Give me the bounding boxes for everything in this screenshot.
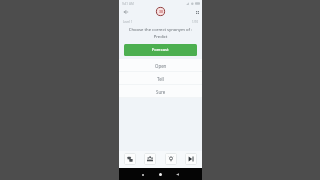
button[interactable]: Fifty fifty: [124, 153, 136, 165]
button[interactable]: Back: [176, 173, 179, 176]
staticText: Level 1: [123, 20, 133, 24]
staticText: Tell: [157, 76, 164, 82]
button[interactable]: Dashboard: [193, 8, 201, 16]
button[interactable]: Sure: [119, 85, 202, 98]
staticText: 9:41 AM: [122, 2, 134, 6]
button[interactable]: Forecast: [124, 44, 197, 56]
staticText: Forecast: [152, 47, 169, 53]
staticText: Sure: [156, 89, 166, 95]
button[interactable]: Home: [159, 173, 162, 176]
button[interactable]: Ask the audience: [144, 153, 156, 165]
staticText: 1/10: [192, 20, 199, 24]
staticText: Open: [155, 63, 167, 69]
staticText: Choose the correct synonym of : Predict: [123, 27, 198, 39]
button[interactable]: Back: [122, 8, 130, 16]
staticText: 30: [159, 9, 163, 14]
button[interactable]: Tell: [119, 72, 202, 85]
button[interactable]: Hint: [165, 153, 177, 165]
button[interactable]: Skip question: [185, 153, 197, 165]
button[interactable]: Open: [119, 59, 202, 72]
